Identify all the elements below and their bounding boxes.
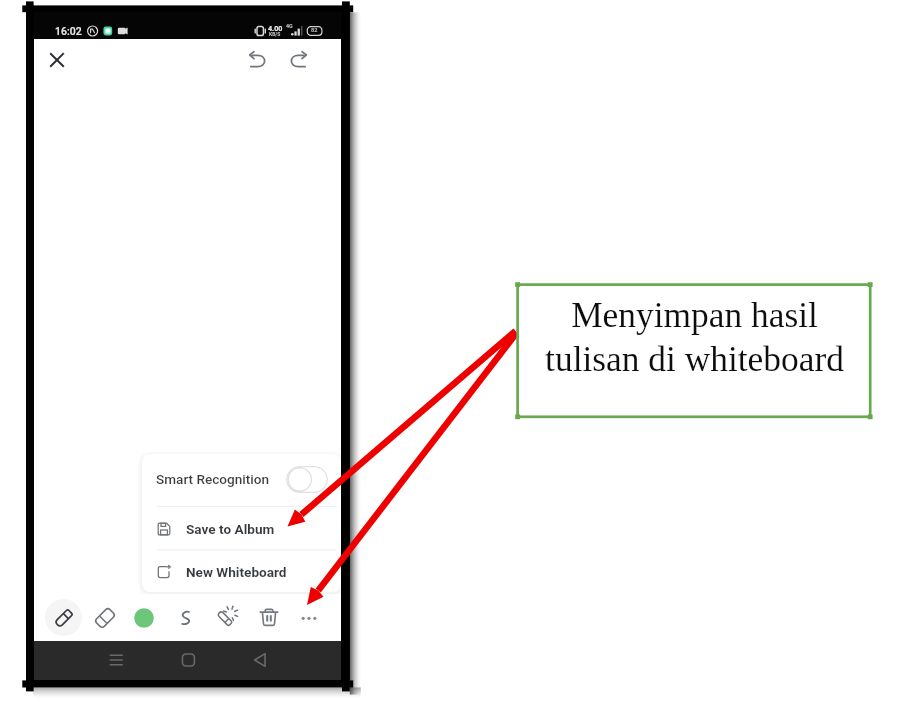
button[interactable]: Save to Album xyxy=(142,507,341,550)
staticText: Save to Album xyxy=(186,521,275,537)
button[interactable]: Stroke width xyxy=(171,604,199,632)
button[interactable]: Home xyxy=(137,641,240,678)
staticText: 4G xyxy=(286,23,293,29)
button[interactable]: Redo xyxy=(284,45,312,73)
button[interactable]: Smart Recognition xyxy=(142,454,341,506)
staticText: Menyimpan hasil tulisan di whiteboard xyxy=(545,295,844,378)
button[interactable]: Smart Recognition toggle xyxy=(286,466,328,493)
button[interactable]: Close xyxy=(43,46,71,74)
staticText: KB/S xyxy=(269,31,281,37)
button[interactable]: Eraser xyxy=(91,604,119,632)
staticText: Smart Recognition xyxy=(156,471,270,487)
button[interactable]: New Whiteboard xyxy=(142,550,341,592)
staticText: New Whiteboard xyxy=(186,564,287,580)
staticText: 4.00 xyxy=(268,24,283,32)
button[interactable]: Delete xyxy=(255,604,283,632)
button[interactable]: Undo xyxy=(244,45,272,73)
button[interactable]: More options xyxy=(295,604,323,632)
staticText: 82 xyxy=(311,27,318,34)
button[interactable]: Recents xyxy=(34,641,137,678)
button[interactable]: Colour xyxy=(130,604,158,632)
staticText: 16:02 xyxy=(55,25,82,37)
button[interactable]: Magic xyxy=(212,604,240,632)
button[interactable]: Back xyxy=(240,641,341,678)
button[interactable]: Pen xyxy=(45,599,82,636)
